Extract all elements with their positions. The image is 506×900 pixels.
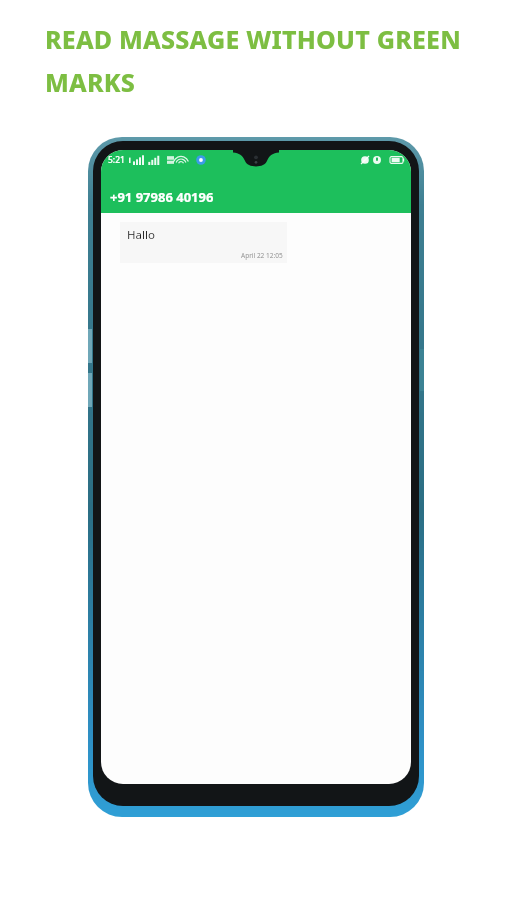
staticText: April 22 12:05 <box>241 251 283 260</box>
other: System status <box>360 154 404 166</box>
button[interactable]: Hallo <box>120 222 287 263</box>
staticText: Hallo <box>127 227 155 243</box>
button[interactable]: +91 97986 40196 <box>101 180 411 213</box>
other: Network status <box>128 154 206 166</box>
staticText: +91 97986 40196 <box>110 188 214 206</box>
staticText: MARKS <box>45 65 136 99</box>
staticText: 5:21 <box>108 154 125 166</box>
staticText: READ MASSAGE WITHOUT GREEN <box>45 22 461 56</box>
